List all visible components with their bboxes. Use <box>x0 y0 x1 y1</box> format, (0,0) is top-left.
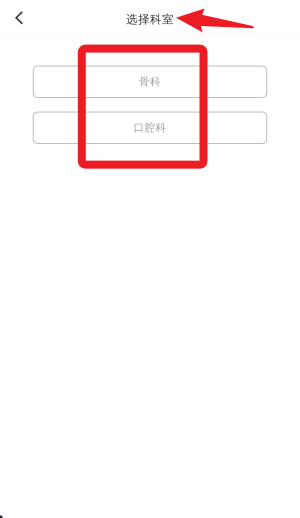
staticText: 选择科室 <box>126 12 174 27</box>
staticText: 骨科 <box>139 75 161 88</box>
button[interactable]: 口腔科 <box>33 112 267 143</box>
button[interactable]: Back <box>4 2 35 33</box>
staticText: 口腔科 <box>133 121 166 134</box>
button[interactable]: 骨科 <box>33 66 267 97</box>
